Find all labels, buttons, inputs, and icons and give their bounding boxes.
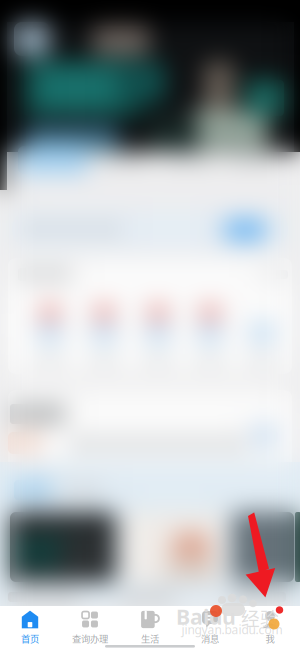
staticText: 查询办理 [72, 632, 108, 645]
staticText: 我 [265, 632, 274, 645]
button[interactable]: 首页 [0, 606, 60, 650]
button[interactable]: 消息 [180, 606, 240, 650]
staticText: 消息 [201, 632, 219, 645]
button[interactable]: 生活 [120, 606, 180, 650]
staticText: 生活 [141, 632, 159, 645]
staticText: jingyan.baidu.com [181, 621, 282, 637]
staticText: Baidu [176, 602, 236, 631]
staticText: 首页 [21, 632, 39, 645]
staticText: 经验 [241, 604, 279, 631]
button[interactable]: 我 [240, 606, 300, 650]
button[interactable]: 查询办理 [60, 606, 120, 650]
